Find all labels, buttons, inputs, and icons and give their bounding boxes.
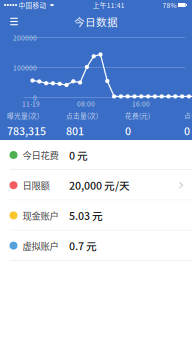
staticText: 100000 <box>13 63 37 72</box>
staticText: 0 <box>184 123 190 138</box>
staticText: 今日花费 <box>22 148 58 162</box>
staticText: 783,315 <box>7 123 46 138</box>
staticText: 0 元 <box>69 147 88 163</box>
staticText: 08:00 <box>77 99 95 108</box>
staticText: 曝光量(次) <box>7 111 39 120</box>
staticText: 0.7 元 <box>69 238 97 253</box>
staticText: 今日数据 <box>74 14 118 29</box>
staticText: 点击量(次) <box>66 111 98 120</box>
staticText: 200000 <box>13 33 37 42</box>
button[interactable]: 日限额 <box>0 170 192 200</box>
staticText: 点击率 <box>184 111 192 120</box>
staticText: 中国移动 <box>18 0 46 10</box>
staticText: 801 <box>66 123 84 138</box>
staticText: 20,000 元/天 <box>69 177 130 193</box>
staticText: 78% <box>162 0 176 10</box>
staticText: 花费(元) <box>125 111 150 120</box>
staticText: 虚拟账户 <box>22 239 58 252</box>
staticText: 0 <box>33 93 37 102</box>
staticText: 日限额 <box>22 178 49 192</box>
staticText: 上午11:41 <box>93 0 125 10</box>
button[interactable]: Menu <box>0 10 28 32</box>
button[interactable]: 现金账户 <box>0 200 192 231</box>
staticText: 现金账户 <box>22 209 58 222</box>
staticText: 11-19 <box>22 99 40 108</box>
staticText: 5.03 元 <box>69 208 103 223</box>
button[interactable]: 虚拟账户 <box>0 231 192 261</box>
button[interactable]: 今日花费 <box>0 140 192 170</box>
staticText: 0 <box>125 123 131 138</box>
staticText: 16:00 <box>132 99 150 108</box>
